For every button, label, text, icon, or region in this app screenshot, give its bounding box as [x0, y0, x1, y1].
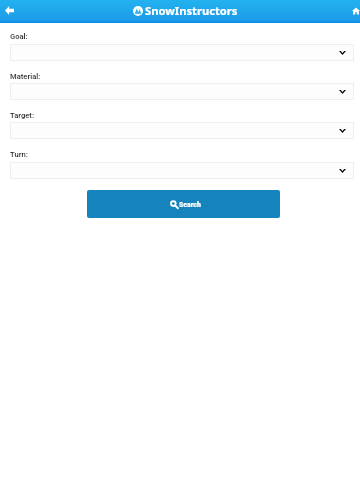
staticText: Search — [179, 200, 201, 209]
staticText: Material: — [10, 72, 41, 81]
staticText: Turn: — [10, 150, 28, 159]
button[interactable]: Home — [346, 0, 360, 23]
button[interactable]: Turn dropdown — [10, 162, 354, 179]
staticText: SnowInstructors — [145, 3, 238, 18]
button[interactable]: Back — [0, 0, 20, 23]
staticText: Target: — [10, 111, 35, 120]
staticText: Goal: — [10, 32, 28, 41]
button[interactable]: Target dropdown — [10, 122, 354, 139]
button[interactable]: Material dropdown — [10, 83, 354, 100]
button[interactable]: Search — [87, 190, 280, 218]
button[interactable]: Goal dropdown — [10, 44, 354, 61]
